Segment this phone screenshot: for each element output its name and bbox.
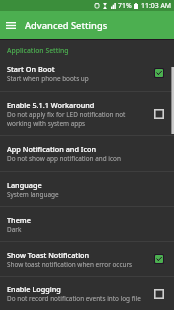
- button[interactable]: Language: [0, 172, 174, 206]
- staticText: working with system apps: [7, 119, 86, 128]
- staticText: Do not apply fix for LED notification no…: [7, 110, 126, 119]
- button[interactable]: Toggle setting: [152, 287, 166, 301]
- button[interactable]: Toggle setting: [152, 107, 166, 121]
- staticText: Start On Boot: [7, 64, 55, 74]
- button[interactable]: Theme: [0, 207, 174, 241]
- staticText: App Notification and Icon: [7, 144, 96, 154]
- button[interactable]: Toggle setting: [152, 252, 166, 266]
- staticText: Enable Logging: [7, 284, 61, 294]
- staticText: Show Toast Notification: [7, 250, 90, 260]
- staticText: 71%: [118, 1, 132, 10]
- button[interactable]: Enable Logging: [0, 277, 174, 310]
- staticText: Do not record notification events into l…: [7, 294, 141, 303]
- button[interactable]: Open navigation menu: [0, 14, 22, 36]
- staticText: Dark: [7, 225, 22, 234]
- staticText: System language: [7, 190, 59, 199]
- button[interactable]: Show Toast Notification: [0, 242, 174, 276]
- staticText: Do not show app notification and icon: [7, 154, 121, 163]
- staticText: Application Setting: [7, 46, 69, 55]
- staticText: Theme: [7, 215, 31, 225]
- staticText: Enable 5.1.1 Workaround: [7, 100, 95, 110]
- staticText: Language: [7, 180, 42, 190]
- button[interactable]: App Notification and Icon: [0, 136, 174, 171]
- button[interactable]: Toggle setting: [152, 66, 166, 80]
- staticText: 11:03 AM: [141, 1, 172, 10]
- staticText: Show toast notification when error occur…: [7, 260, 133, 269]
- button[interactable]: Enable 5.1.1 Workaround: [0, 92, 174, 135]
- button[interactable]: Start On Boot: [0, 55, 174, 91]
- staticText: Advanced Settings: [25, 19, 108, 32]
- staticText: Start when phone boots up: [7, 74, 89, 83]
